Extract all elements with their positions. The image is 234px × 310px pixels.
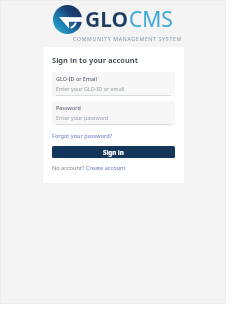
staticText: COMMUNITY MANAGEMENT SYSTEM xyxy=(73,35,182,42)
staticText: CMS xyxy=(129,5,173,34)
staticText: GLO xyxy=(85,5,129,34)
staticText: Create account xyxy=(86,164,126,172)
staticText: Sign in xyxy=(103,148,124,156)
button[interactable]: Password xyxy=(52,101,175,125)
staticText: GLO-ID or Email xyxy=(56,75,97,82)
staticText: No account? xyxy=(52,164,86,172)
button[interactable]: Create account xyxy=(86,164,126,172)
staticText: Forgot your password? xyxy=(52,132,113,140)
button[interactable]: Forgot your password? xyxy=(52,131,113,141)
staticText: Sign in to your account xyxy=(52,55,138,65)
staticText: Enter your password xyxy=(56,114,109,121)
button[interactable]: GLO-ID or Email xyxy=(52,72,175,96)
staticText: Enter your GLO-ID or email xyxy=(56,85,125,92)
button[interactable]: Sign in xyxy=(52,146,175,158)
staticText: Password xyxy=(56,104,81,111)
